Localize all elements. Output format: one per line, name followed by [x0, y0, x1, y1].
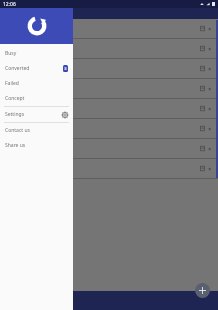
button[interactable]: Failed	[0, 76, 73, 91]
button[interactable]	[0, 139, 218, 158]
button[interactable]	[0, 39, 218, 58]
staticText: Contact us	[5, 127, 30, 134]
button[interactable]	[0, 119, 218, 138]
staticText: Busy	[5, 50, 17, 57]
staticText: Concept	[5, 95, 25, 102]
staticText: Share us	[5, 142, 26, 149]
button[interactable]: Contact us	[0, 123, 73, 138]
staticText: 12:06	[3, 1, 16, 8]
button[interactable]	[0, 59, 218, 78]
button[interactable]	[0, 79, 218, 98]
staticText: 12:06	[3, 1, 16, 8]
button[interactable]: Busy	[0, 46, 73, 61]
button[interactable]: Add	[195, 283, 210, 298]
staticText: Failed	[5, 80, 19, 87]
staticText: 3	[64, 66, 67, 71]
button[interactable]	[0, 159, 218, 178]
button[interactable]: Converted	[0, 61, 73, 76]
staticText: Settings	[5, 111, 25, 118]
button[interactable]	[0, 19, 218, 38]
button[interactable]: Settings	[0, 107, 73, 122]
button[interactable]: Concept	[0, 91, 73, 106]
staticText: Converted	[5, 65, 30, 72]
button[interactable]: Share us	[0, 138, 73, 153]
button[interactable]	[0, 99, 218, 118]
